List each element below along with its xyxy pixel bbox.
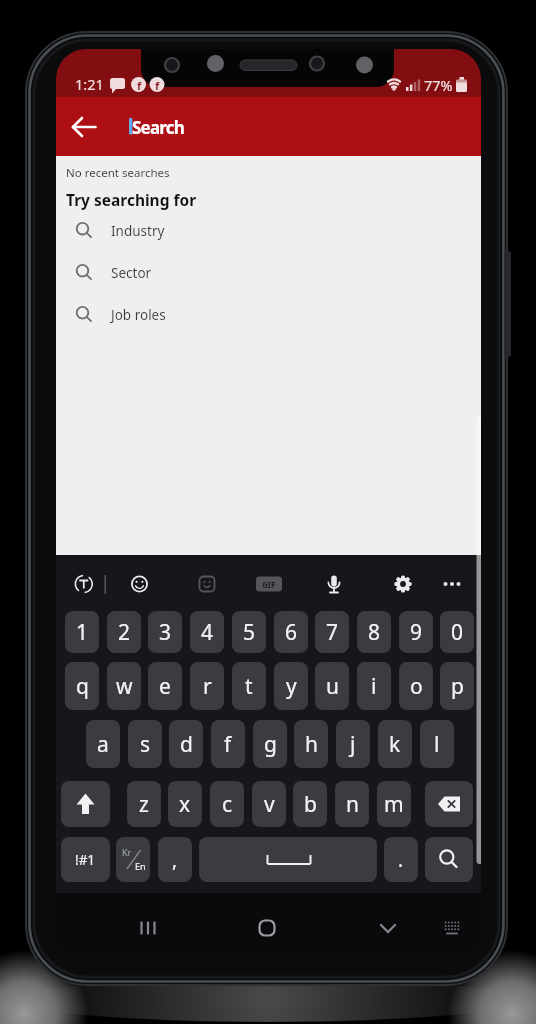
- button[interactable]: r: [190, 662, 224, 710]
- button[interactable]: [116, 837, 150, 882]
- staticText: u: [326, 672, 339, 701]
- button[interactable]: j: [336, 720, 370, 768]
- staticText: x: [179, 790, 191, 819]
- button[interactable]: s: [128, 720, 162, 768]
- button[interactable]: y: [274, 662, 308, 710]
- button[interactable]: m: [377, 781, 411, 827]
- staticText: f: [137, 78, 142, 93]
- staticText: 1:21: [75, 74, 104, 94]
- button[interactable]: z: [127, 781, 161, 827]
- staticText: t: [245, 672, 253, 701]
- button[interactable]: [68, 568, 100, 600]
- button[interactable]: a: [86, 720, 120, 768]
- button[interactable]: u: [315, 662, 349, 710]
- button[interactable]: [61, 781, 110, 827]
- staticText: r: [203, 672, 212, 701]
- staticText: 6: [285, 618, 298, 647]
- button[interactable]: f: [211, 720, 245, 768]
- staticText: s: [140, 730, 151, 759]
- staticText: m: [384, 790, 404, 819]
- button[interactable]: t: [232, 662, 266, 710]
- button[interactable]: g: [253, 720, 287, 768]
- button[interactable]: e: [148, 662, 182, 710]
- button[interactable]: o: [399, 662, 433, 710]
- staticText: No recent searches: [66, 165, 170, 181]
- staticText: j: [350, 730, 356, 759]
- staticText: ,: [172, 847, 178, 873]
- button[interactable]: 1: [65, 611, 99, 653]
- button[interactable]: [253, 568, 285, 600]
- staticText: z: [139, 790, 149, 819]
- staticText: 2: [118, 618, 131, 647]
- staticText: c: [222, 790, 233, 819]
- button[interactable]: ,: [158, 837, 192, 882]
- button[interactable]: w: [107, 662, 141, 710]
- staticText: 7: [326, 618, 339, 647]
- staticText: q: [76, 672, 89, 701]
- staticText: Sector: [111, 264, 152, 282]
- button[interactable]: [128, 908, 168, 948]
- staticText: 1: [76, 618, 89, 647]
- staticText: d: [180, 730, 193, 759]
- button[interactable]: [66, 109, 102, 145]
- button[interactable]: 3: [148, 611, 182, 653]
- staticText: k: [389, 730, 401, 759]
- staticText: Industry: [111, 222, 165, 240]
- button[interactable]: 7: [315, 611, 349, 653]
- button[interactable]: i: [357, 662, 391, 710]
- button[interactable]: [247, 908, 287, 948]
- staticText: a: [97, 730, 109, 759]
- staticText: i: [371, 672, 377, 701]
- staticText: y: [286, 672, 297, 701]
- staticText: p: [451, 672, 464, 701]
- staticText: g: [264, 730, 277, 759]
- button[interactable]: 9: [399, 611, 433, 653]
- button[interactable]: 2: [107, 611, 141, 653]
- staticText: 77%: [424, 75, 453, 95]
- button[interactable]: [436, 568, 468, 600]
- button[interactable]: [199, 837, 377, 882]
- button[interactable]: v: [252, 781, 286, 827]
- button[interactable]: 6: [274, 611, 308, 653]
- staticText: Search: [132, 116, 184, 139]
- button[interactable]: [387, 568, 419, 600]
- button[interactable]: b: [293, 781, 327, 827]
- button[interactable]: Job roles: [56, 294, 481, 336]
- button[interactable]: n: [335, 781, 369, 827]
- staticText: 5: [243, 618, 256, 647]
- button[interactable]: l: [420, 720, 454, 768]
- button[interactable]: d: [169, 720, 203, 768]
- button[interactable]: Sector: [56, 252, 481, 294]
- button[interactable]: [191, 568, 223, 600]
- button[interactable]: q: [65, 662, 99, 710]
- button[interactable]: [425, 837, 473, 882]
- button[interactable]: [368, 908, 408, 948]
- button[interactable]: 8: [357, 611, 391, 653]
- button[interactable]: k: [378, 720, 412, 768]
- staticText: w: [116, 672, 133, 701]
- button[interactable]: p: [440, 662, 474, 710]
- button[interactable]: !#1: [61, 837, 110, 882]
- staticText: v: [264, 790, 275, 819]
- button[interactable]: x: [168, 781, 202, 827]
- staticText: 9: [410, 618, 423, 647]
- staticText: n: [346, 790, 359, 819]
- staticText: .: [398, 847, 404, 873]
- staticText: GIF: [262, 579, 276, 590]
- button[interactable]: [124, 568, 156, 600]
- button[interactable]: [425, 781, 473, 827]
- button[interactable]: .: [384, 837, 418, 882]
- button[interactable]: [432, 908, 472, 948]
- staticText: 4: [201, 618, 214, 647]
- button[interactable]: 5: [232, 611, 266, 653]
- button[interactable]: h: [294, 720, 328, 768]
- staticText: e: [159, 672, 171, 701]
- button[interactable]: [318, 568, 350, 600]
- button[interactable]: Industry: [56, 210, 481, 252]
- staticText: !#1: [75, 851, 96, 869]
- staticText: 3: [159, 618, 172, 647]
- button[interactable]: 4: [190, 611, 224, 653]
- button[interactable]: c: [210, 781, 244, 827]
- staticText: f: [155, 78, 160, 93]
- button[interactable]: 0: [440, 611, 474, 653]
